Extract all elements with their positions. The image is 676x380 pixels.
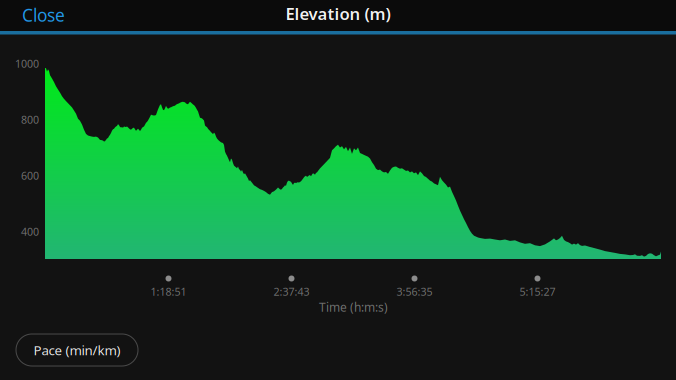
button[interactable]: Close xyxy=(22,0,86,30)
staticText: 5:15:27 xyxy=(519,284,555,299)
staticText: 1:18:51 xyxy=(150,284,186,299)
staticText: Time (h:m:s) xyxy=(319,299,388,315)
staticText: 1000 xyxy=(15,56,39,71)
staticText: 800 xyxy=(21,112,39,127)
staticText: Close xyxy=(22,3,65,27)
staticText: Pace (min/km) xyxy=(33,341,120,359)
staticText: 400 xyxy=(21,224,39,239)
staticText: Elevation (m) xyxy=(285,2,390,25)
button[interactable]: Pace (min/km) xyxy=(16,334,138,366)
staticText: 600 xyxy=(21,168,39,183)
staticText: 2:37:43 xyxy=(273,284,309,299)
staticText: 3:56:35 xyxy=(396,284,432,299)
